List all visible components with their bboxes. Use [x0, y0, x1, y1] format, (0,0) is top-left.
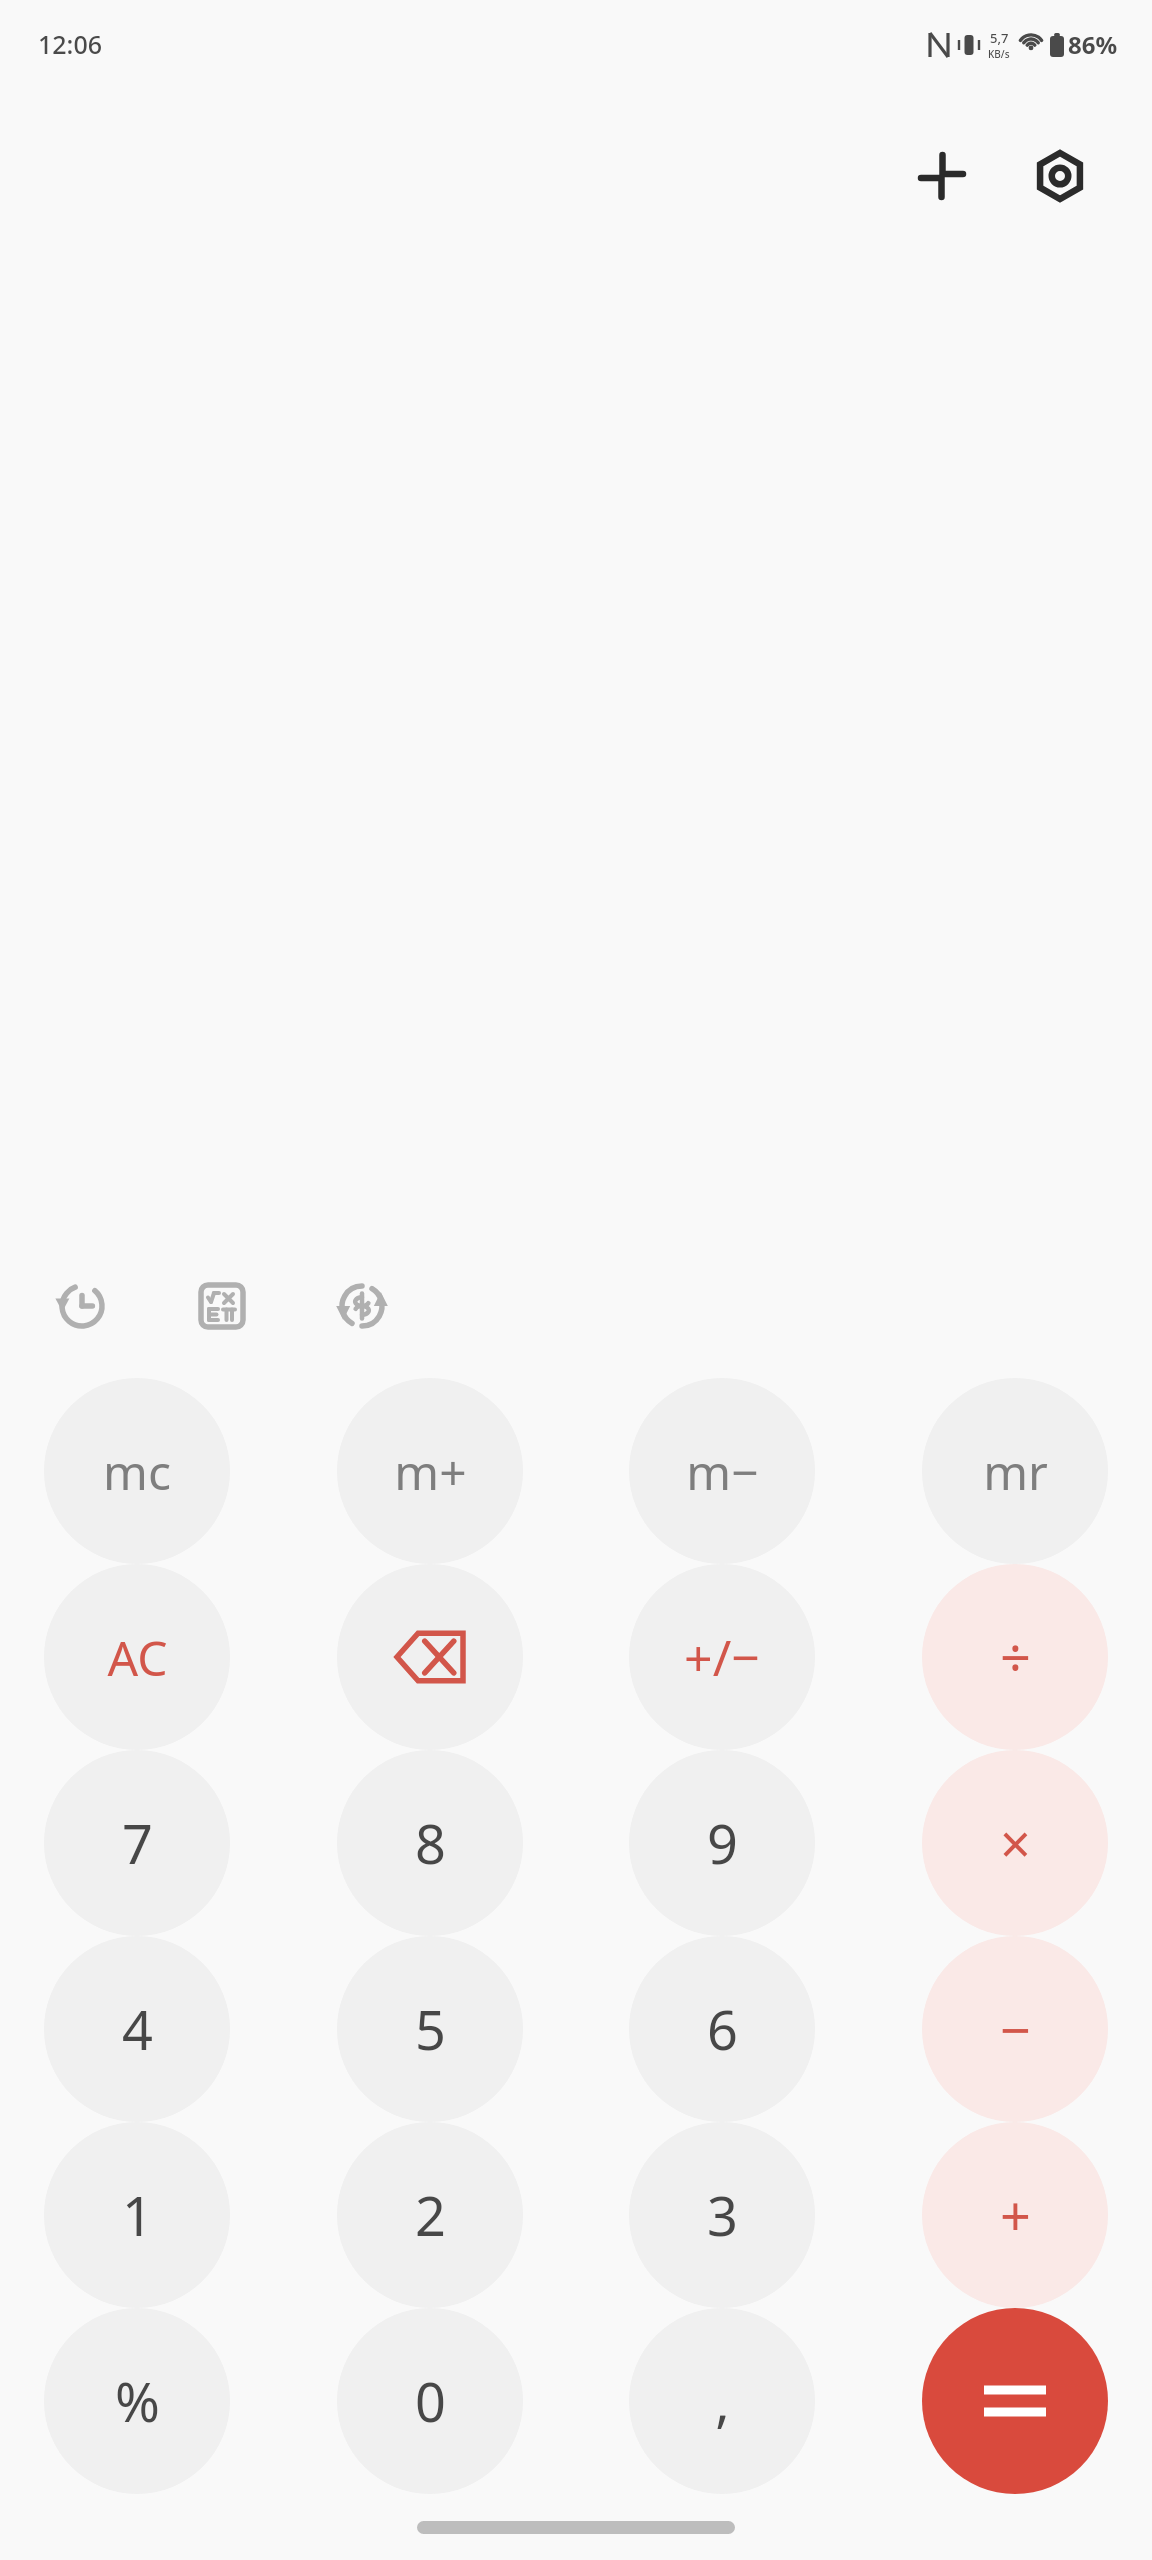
- button[interactable]: Backspace: [337, 1564, 523, 1750]
- staticText: mc: [103, 1439, 171, 1504]
- staticText: 9: [707, 1806, 738, 1880]
- button[interactable]: 3: [629, 2122, 815, 2308]
- button[interactable]: History: [40, 1264, 124, 1348]
- button[interactable]: ,: [629, 2308, 815, 2494]
- button[interactable]: 8: [337, 1750, 523, 1936]
- button[interactable]: Collapse: [894, 128, 990, 224]
- button[interactable]: 0: [337, 2308, 523, 2494]
- staticText: 6: [707, 1992, 738, 2066]
- staticText: 2: [415, 2178, 446, 2252]
- button[interactable]: Scientific: [180, 1264, 264, 1348]
- button[interactable]: mc: [44, 1378, 230, 1564]
- button[interactable]: AC: [44, 1564, 230, 1750]
- button[interactable]: ÷: [922, 1564, 1108, 1750]
- button[interactable]: +/−: [629, 1564, 815, 1750]
- staticText: 5: [415, 1992, 446, 2066]
- staticText: 8: [415, 1806, 446, 1880]
- staticText: ×: [1000, 1806, 1031, 1880]
- button[interactable]: 5: [337, 1936, 523, 2122]
- button[interactable]: ×: [922, 1750, 1108, 1936]
- staticText: −: [1000, 1992, 1031, 2066]
- staticText: ÷: [1000, 1620, 1031, 1694]
- button[interactable]: m−: [629, 1378, 815, 1564]
- staticText: m+: [394, 1439, 467, 1504]
- staticText: +: [1000, 2178, 1031, 2252]
- staticText: m−: [686, 1439, 759, 1504]
- button[interactable]: 7: [44, 1750, 230, 1936]
- staticText: mr: [983, 1439, 1048, 1504]
- button[interactable]: 6: [629, 1936, 815, 2122]
- staticText: KB/s: [988, 47, 1010, 61]
- staticText: 86%: [1068, 28, 1118, 61]
- button[interactable]: m+: [337, 1378, 523, 1564]
- button[interactable]: 1: [44, 2122, 230, 2308]
- button[interactable]: 2: [337, 2122, 523, 2308]
- staticText: 1: [122, 2178, 153, 2252]
- button[interactable]: −: [922, 1936, 1108, 2122]
- staticText: 0: [415, 2364, 446, 2438]
- staticText: AC: [107, 1625, 168, 1690]
- staticText: 5,7: [990, 29, 1009, 47]
- button[interactable]: [922, 2308, 1108, 2494]
- staticText: 4: [122, 1992, 153, 2066]
- button[interactable]: 9: [629, 1750, 815, 1936]
- button[interactable]: %: [44, 2308, 230, 2494]
- button[interactable]: Currency: [320, 1264, 404, 1348]
- staticText: 12:06: [38, 27, 103, 61]
- button[interactable]: Settings: [1012, 128, 1108, 224]
- staticText: +/−: [684, 1623, 760, 1691]
- staticText: %: [115, 2364, 160, 2438]
- button[interactable]: 4: [44, 1936, 230, 2122]
- button[interactable]: +: [922, 2122, 1108, 2308]
- button[interactable]: mr: [922, 1378, 1108, 1564]
- staticText: 3: [707, 2178, 738, 2252]
- staticText: 7: [122, 1806, 153, 1880]
- staticText: ,: [715, 2364, 730, 2438]
